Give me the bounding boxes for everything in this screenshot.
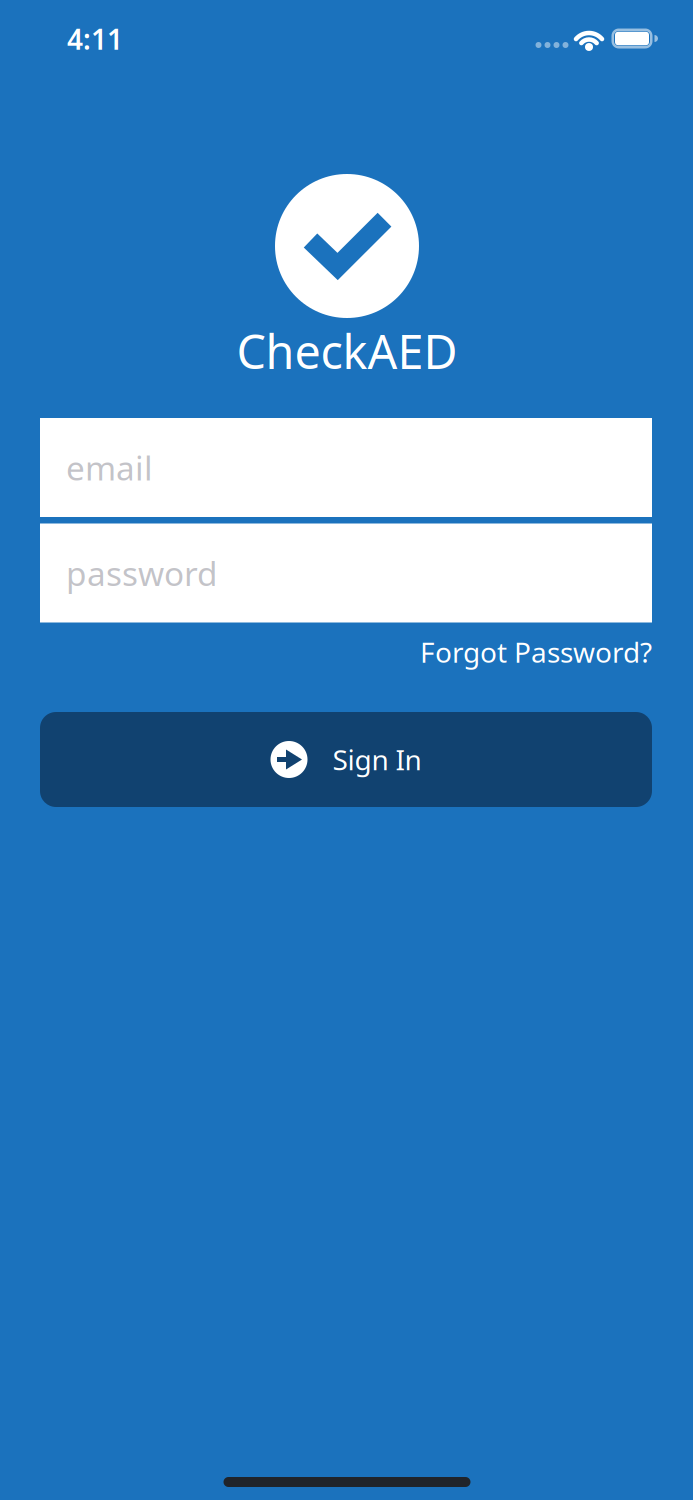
staticText: 4:11 — [67, 20, 123, 58]
staticText: email — [66, 445, 153, 490]
button[interactable]: email — [40, 418, 652, 517]
staticText: password — [66, 551, 218, 595]
button[interactable]: Sign In — [40, 712, 652, 807]
staticText: Forgot Password? — [420, 633, 652, 671]
button[interactable]: password — [40, 523, 652, 622]
staticText: Sign In — [332, 741, 421, 778]
staticText: CheckAED — [236, 320, 457, 382]
button[interactable]: Forgot Password? — [40, 633, 652, 671]
